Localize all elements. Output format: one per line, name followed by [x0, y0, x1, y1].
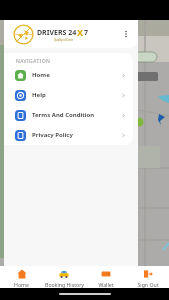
staticText: X — [77, 26, 84, 38]
button[interactable]: Home — [0, 269, 43, 288]
staticText: Help — [32, 91, 46, 99]
staticText: Privacy Policy — [32, 131, 73, 139]
button[interactable]: Wallet — [85, 269, 127, 288]
staticText: Quality of Drive — [54, 38, 73, 42]
staticText: Terms And Condition — [32, 111, 95, 119]
button[interactable]: Home — [4, 65, 133, 85]
button[interactable]: More options — [120, 28, 132, 40]
button[interactable]: Help — [4, 85, 133, 105]
staticText: DRIVERS 24 — [37, 28, 77, 38]
staticText: 7 — [84, 28, 89, 38]
button[interactable]: Terms And Condition — [4, 105, 133, 125]
button[interactable]: Sign Out — [127, 269, 169, 288]
staticText: Home — [32, 71, 50, 79]
staticText: NAVIGATION — [16, 58, 51, 65]
staticText: Home — [14, 281, 29, 288]
staticText: Sign Out — [137, 281, 159, 288]
button[interactable]: Privacy Policy — [4, 125, 133, 145]
button[interactable]: Booking History — [43, 269, 85, 288]
staticText: Wallet — [98, 281, 114, 288]
staticText: Booking History — [45, 281, 84, 288]
